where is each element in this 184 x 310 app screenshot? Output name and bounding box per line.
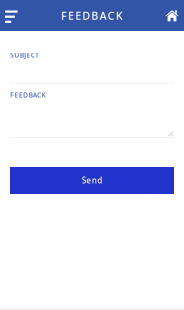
- staticText: FEEDBACK: [61, 8, 123, 23]
- button[interactable]: Home: [160, 0, 184, 30]
- button[interactable]: Send: [10, 167, 174, 194]
- staticText: FEEDBACK: [10, 91, 45, 99]
- staticText: Send: [82, 175, 102, 186]
- button[interactable]: Menu: [0, 0, 23, 30]
- staticText: SUBJECT: [10, 51, 39, 59]
